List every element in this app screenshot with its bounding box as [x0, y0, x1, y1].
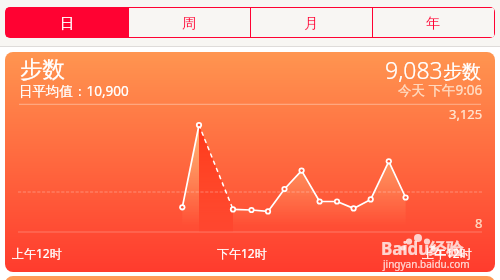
button[interactable]: 年	[373, 8, 494, 37]
staticText: 9,083	[385, 54, 443, 85]
staticText: 年	[426, 14, 441, 32]
button[interactable]: 日	[6, 8, 128, 37]
button[interactable]: 周	[129, 8, 250, 37]
staticText: 上午12时	[422, 245, 472, 261]
staticText: Baidu经验	[381, 237, 464, 260]
staticText: 月	[304, 14, 319, 32]
button[interactable]: 月	[251, 8, 372, 37]
staticText: 日	[60, 14, 75, 32]
staticText: 上午12时	[12, 245, 62, 261]
staticText: 今天 下午9:06	[398, 81, 483, 99]
staticText: 8	[475, 214, 483, 232]
staticText: 3,125	[449, 105, 483, 123]
staticText: jingyan.baidu.com	[383, 257, 470, 271]
staticText: 步数	[20, 55, 65, 83]
staticText: 步数	[443, 60, 481, 84]
staticText: 下午12时	[217, 245, 267, 261]
staticText: 日平均值：10,900	[19, 82, 129, 100]
staticText: 周	[182, 14, 197, 32]
